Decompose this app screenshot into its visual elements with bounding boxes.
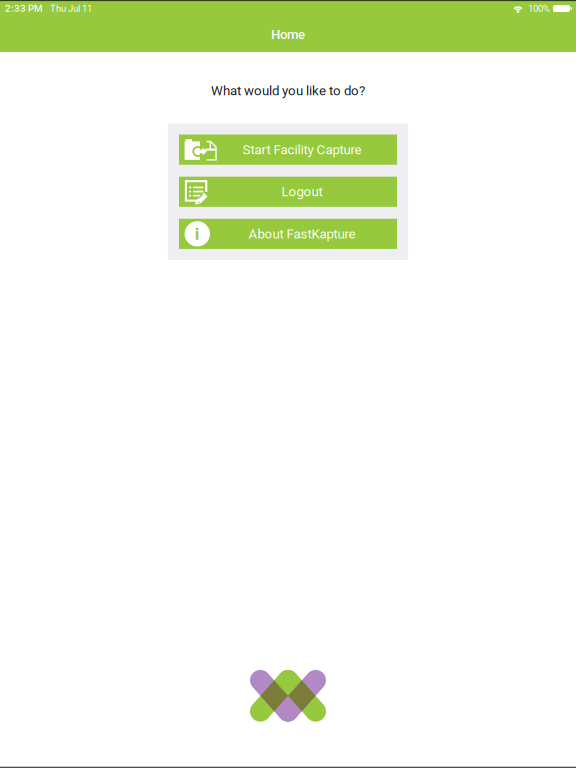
staticText: What would you like to do? [211,83,365,98]
button[interactable]: About FastKapture [179,219,397,249]
staticText: Thu Jul 11 [50,3,92,14]
staticText: Home [271,27,305,42]
button[interactable]: Start Facility Capture [179,134,397,165]
staticText: Logout [281,184,322,199]
staticText: Start Facility Capture [242,142,361,157]
staticText: 2:33 PM [5,3,43,14]
button[interactable]: Logout [179,177,397,207]
staticText: 100% [528,3,550,14]
staticText: About FastKapture [248,226,355,242]
staticText: i [195,224,200,244]
